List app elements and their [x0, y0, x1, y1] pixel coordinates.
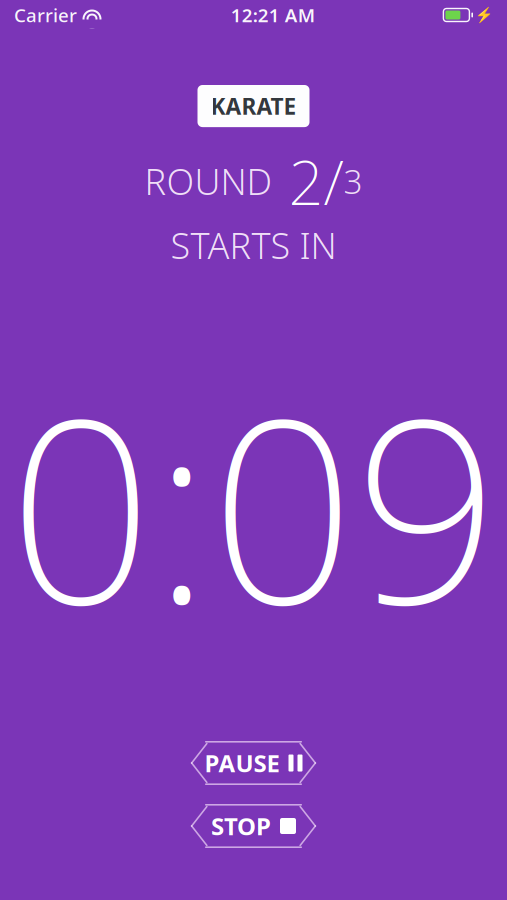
staticText: ⚡ — [475, 7, 493, 23]
staticText: PAUSE — [204, 747, 279, 779]
button[interactable]: STOP — [193, 804, 313, 848]
button[interactable]: KARATE — [197, 85, 309, 127]
staticText: 2 — [272, 140, 323, 222]
staticText: / — [323, 140, 343, 222]
staticText: 0:09 — [8, 337, 498, 673]
staticText: STARTS IN — [170, 221, 336, 269]
staticText: 12:21 AM — [231, 3, 315, 27]
staticText: KARATE — [210, 91, 296, 121]
staticText: STOP — [211, 810, 271, 842]
staticText: ROUND — [144, 157, 272, 205]
button[interactable]: PAUSE — [193, 741, 313, 785]
staticText: Carrier — [14, 3, 77, 27]
staticText: 3 — [343, 159, 362, 203]
